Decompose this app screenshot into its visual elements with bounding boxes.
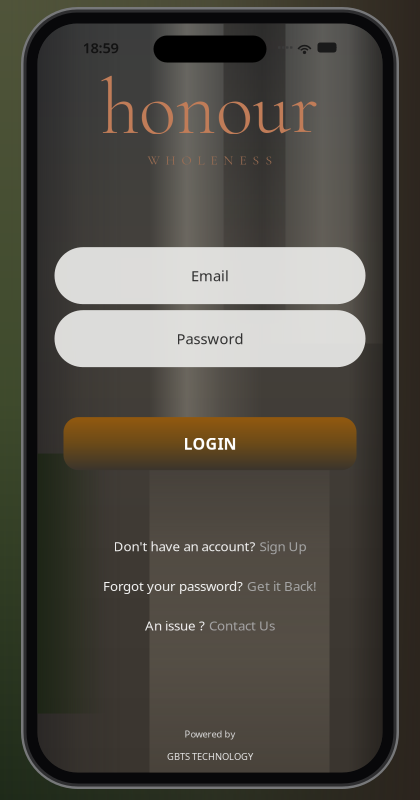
button[interactable]: LOGIN [63,417,356,470]
staticText: WHOLENESS [147,152,272,168]
staticText: Password [176,329,243,348]
button[interactable]: Don't have an account? [113,537,306,555]
staticText: Forgot your password? [103,577,243,595]
staticText: An issue ? [145,617,205,634]
staticText: 18:59 [82,38,118,57]
button[interactable]: Password [54,310,365,367]
staticText: Sign Up [259,537,306,555]
staticText: Get it Back! [247,577,317,595]
staticText: GBTS TECHNOLOGY [167,750,253,762]
button[interactable]: Forgot your password? [103,577,317,595]
staticText: Powered by [184,728,235,740]
staticText: honour [101,60,319,154]
staticText: Contact Us [209,617,275,634]
staticText: Don't have an account? [113,537,255,555]
staticText: LOGIN [183,433,236,454]
button[interactable]: Email [54,247,365,304]
staticText: Email [191,266,229,285]
button[interactable]: An issue ? [145,617,275,634]
